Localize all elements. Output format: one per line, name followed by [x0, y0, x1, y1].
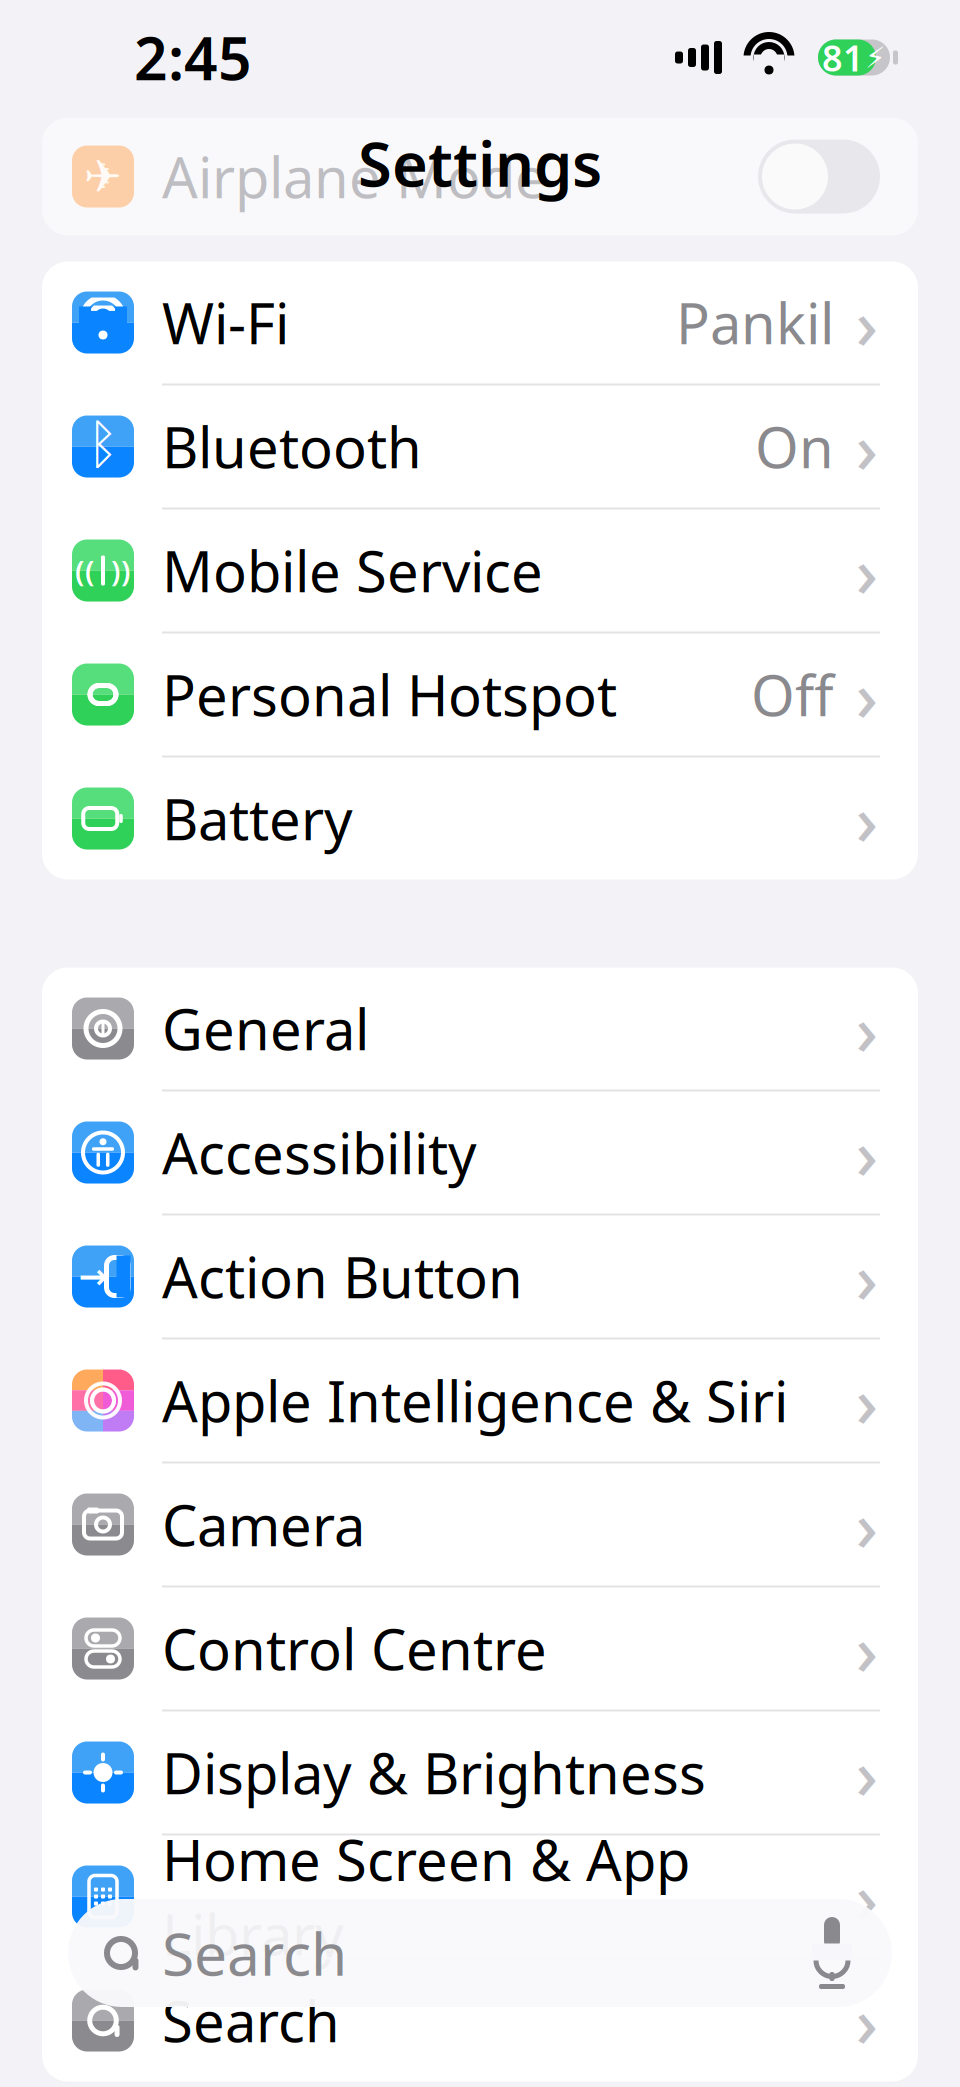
button[interactable]: (( ))	[42, 509, 918, 633]
button[interactable]: Wi-Fi	[42, 261, 918, 385]
staticText: ›	[855, 400, 878, 493]
staticText: Wi-Fi	[162, 285, 289, 360]
staticText: ›	[855, 276, 878, 369]
staticText: Camera	[162, 1487, 365, 1562]
staticText: Display & Brightness	[162, 1735, 706, 1810]
staticText: General	[162, 991, 369, 1066]
staticText: Settings	[358, 122, 602, 204]
staticText: ›	[855, 1726, 878, 1819]
button[interactable]: Battery	[42, 757, 918, 879]
staticText: ›	[855, 1602, 878, 1695]
staticText: 2:45	[134, 18, 252, 96]
staticText: On	[755, 409, 834, 484]
staticText: ›	[855, 1106, 878, 1199]
button[interactable]: Apple Intelligence & Siri	[42, 1339, 918, 1463]
staticText: ›	[855, 524, 878, 617]
staticText: Off	[751, 657, 834, 732]
staticText: Apple Intelligence & Siri	[162, 1363, 788, 1438]
staticText: Personal Hotspot	[162, 657, 617, 732]
staticText: Bluetooth	[162, 409, 422, 484]
button[interactable]: ᛒ	[42, 385, 918, 509]
staticText: ⚡︎	[865, 41, 886, 74]
staticText: ›	[855, 1478, 878, 1571]
staticText: (( ))	[75, 551, 131, 590]
staticText: Search	[162, 1914, 347, 1992]
staticText: 81	[822, 34, 864, 81]
staticText: ᛒ	[87, 420, 119, 472]
staticText: Accessibility	[162, 1115, 477, 1190]
staticText: Control Centre	[162, 1611, 547, 1686]
staticText: ›	[855, 982, 878, 1075]
staticText: Home Screen & App Library	[162, 1822, 690, 1971]
staticText: →	[78, 1257, 107, 1296]
staticText: Battery	[162, 781, 353, 856]
staticText: Pankil	[676, 285, 834, 360]
button[interactable]: Accessibility	[42, 1091, 918, 1215]
button[interactable]: ✳	[42, 1711, 918, 1835]
staticText: ›	[855, 1974, 878, 2067]
button[interactable]: →	[42, 1215, 918, 1339]
staticText: Search	[162, 1983, 340, 2058]
button[interactable]: Home Screen & App Library	[42, 1835, 918, 1959]
staticText: ✈	[84, 151, 122, 202]
button[interactable]: Camera	[42, 1463, 918, 1587]
staticText: Mobile Service	[162, 533, 543, 608]
staticText: ›	[855, 1850, 878, 1943]
button[interactable]: General	[42, 967, 918, 1091]
button[interactable]: Personal Hotspot	[42, 633, 918, 757]
staticText: ›	[855, 1354, 878, 1447]
staticText: ›	[855, 648, 878, 741]
staticText: Airplane Mode	[162, 139, 547, 214]
staticText: ›	[855, 772, 878, 865]
staticText: Action Button	[162, 1239, 523, 1314]
button[interactable]: Search	[42, 1959, 918, 2081]
staticText: ›	[855, 1230, 878, 1323]
button[interactable]: Control Centre	[42, 1587, 918, 1711]
button[interactable]: Search	[68, 1899, 892, 2007]
